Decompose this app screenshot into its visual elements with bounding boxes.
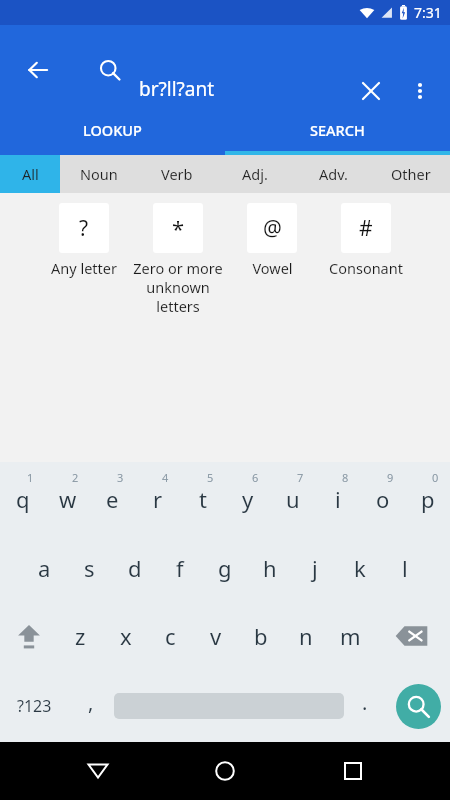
button[interactable]: 9: [360, 462, 405, 534]
button[interactable]: SEARCH: [225, 105, 450, 155]
button[interactable]: c: [148, 602, 193, 670]
button[interactable]: @: [225, 203, 319, 278]
button[interactable]: 5: [180, 462, 225, 534]
button[interactable]: v: [193, 602, 238, 670]
button[interactable]: Recents: [323, 742, 383, 800]
staticText: b: [254, 621, 268, 651]
staticText: o: [376, 484, 390, 514]
button[interactable]: d: [112, 534, 157, 602]
staticText: Adv.: [319, 164, 348, 184]
button[interactable]: ?123: [0, 670, 68, 742]
button[interactable]: 8: [315, 462, 360, 534]
staticText: LOOKUP: [83, 120, 142, 140]
button[interactable]: Verb: [138, 155, 216, 193]
staticText: Vowel: [252, 258, 293, 278]
button[interactable]: Backspace: [373, 602, 450, 670]
staticText: d: [128, 553, 142, 583]
button[interactable]: 7: [270, 462, 315, 534]
staticText: 2: [72, 470, 79, 485]
staticText: 0: [432, 470, 439, 485]
button[interactable]: a: [22, 534, 67, 602]
staticText: Zero or more unknown letters: [131, 258, 225, 316]
staticText: t: [199, 484, 207, 514]
staticText: Consonant: [329, 258, 403, 278]
staticText: 9: [387, 470, 394, 485]
staticText: z: [75, 621, 86, 651]
staticText: v: [210, 621, 222, 651]
button[interactable]: f: [157, 534, 202, 602]
staticText: h: [263, 553, 277, 583]
staticText: 5: [207, 470, 214, 485]
button[interactable]: Home: [195, 742, 255, 800]
button[interactable]: Search: [386, 670, 450, 742]
staticText: @: [263, 214, 282, 243]
staticText: r: [153, 484, 163, 514]
staticText: 7: [297, 470, 304, 485]
staticText: n: [299, 621, 313, 651]
button[interactable]: g: [202, 534, 247, 602]
staticText: Any letter: [51, 258, 117, 278]
staticText: f: [176, 553, 184, 583]
button[interactable]: Back: [14, 46, 62, 94]
button[interactable]: 4: [135, 462, 180, 534]
button[interactable]: 1: [0, 462, 45, 534]
button[interactable]: .: [344, 670, 386, 742]
button[interactable]: Clear: [347, 67, 395, 115]
button[interactable]: *: [131, 203, 225, 316]
button[interactable]: Other: [372, 155, 450, 193]
staticText: Other: [391, 164, 431, 184]
staticText: ?123: [17, 695, 52, 717]
button[interactable]: b: [238, 602, 283, 670]
button[interactable]: 3: [90, 462, 135, 534]
button[interactable]: 0: [405, 462, 450, 534]
button[interactable]: Shift: [0, 602, 58, 670]
staticText: 1: [27, 470, 34, 485]
button[interactable]: Adj.: [216, 155, 294, 193]
button[interactable]: Noun: [60, 155, 138, 193]
button[interactable]: j: [292, 534, 337, 602]
staticText: y: [242, 484, 254, 514]
staticText: e: [106, 484, 119, 514]
staticText: g: [218, 553, 232, 583]
button[interactable]: 6: [225, 462, 270, 534]
button[interactable]: Space: [114, 670, 344, 742]
button[interactable]: h: [247, 534, 292, 602]
staticText: a: [38, 553, 51, 583]
staticText: Verb: [161, 164, 193, 184]
staticText: i: [335, 484, 341, 514]
button[interactable]: s: [67, 534, 112, 602]
staticText: m: [340, 621, 361, 651]
staticText: #: [359, 214, 373, 243]
button[interactable]: LOOKUP: [0, 105, 225, 155]
staticText: 3: [117, 470, 124, 485]
staticText: p: [421, 484, 435, 514]
staticText: .: [362, 689, 368, 716]
staticText: br?ll?ant: [139, 76, 215, 102]
staticText: x: [120, 621, 132, 651]
button[interactable]: m: [328, 602, 373, 670]
button[interactable]: n: [283, 602, 328, 670]
button[interactable]: All: [0, 155, 60, 193]
button[interactable]: Adv.: [294, 155, 372, 193]
button[interactable]: ?: [37, 203, 131, 278]
button[interactable]: ,: [68, 670, 114, 742]
staticText: w: [59, 484, 77, 514]
staticText: 8: [342, 470, 349, 485]
button[interactable]: 2: [45, 462, 90, 534]
staticText: 7:31: [414, 3, 442, 22]
staticText: SEARCH: [310, 120, 365, 140]
staticText: k: [354, 553, 366, 583]
button[interactable]: l: [382, 534, 427, 602]
staticText: 4: [162, 470, 169, 485]
staticText: All: [22, 164, 39, 184]
button[interactable]: k: [337, 534, 382, 602]
button[interactable]: z: [58, 602, 103, 670]
button[interactable]: #: [319, 203, 413, 278]
staticText: ,: [88, 689, 94, 716]
button[interactable]: More options: [398, 69, 442, 113]
staticText: l: [402, 553, 408, 583]
staticText: s: [84, 553, 95, 583]
button[interactable]: Back: [68, 742, 128, 800]
button[interactable]: x: [103, 602, 148, 670]
staticText: q: [16, 484, 30, 514]
